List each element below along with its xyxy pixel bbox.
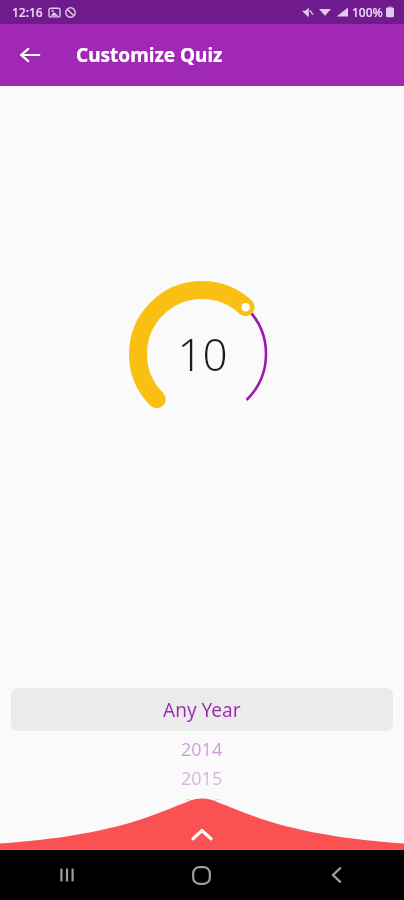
staticText: 12:16 [12,4,43,20]
staticText: 2015 [181,766,223,791]
staticText: 2014 [181,737,223,762]
button[interactable]: 2014 [0,736,404,762]
staticText: 2018 [186,817,219,836]
button[interactable]: Any Year [11,688,393,731]
button[interactable]: Expand options [0,796,404,850]
staticText: 2016 [184,794,221,814]
button[interactable]: 2018 [0,816,404,836]
staticText: 10 [177,324,228,384]
staticText: Customize Quiz [76,42,223,68]
button[interactable]: 2016 [0,794,404,814]
button[interactable]: Recent apps [0,850,134,900]
button[interactable]: Home [134,850,269,900]
staticText: 100% [352,4,383,20]
staticText: Any Year [163,697,241,723]
button[interactable]: 2015 [0,765,404,791]
button[interactable]: Back [269,850,404,900]
button[interactable]: Number of questions [127,279,277,429]
button[interactable]: Back [6,31,54,79]
